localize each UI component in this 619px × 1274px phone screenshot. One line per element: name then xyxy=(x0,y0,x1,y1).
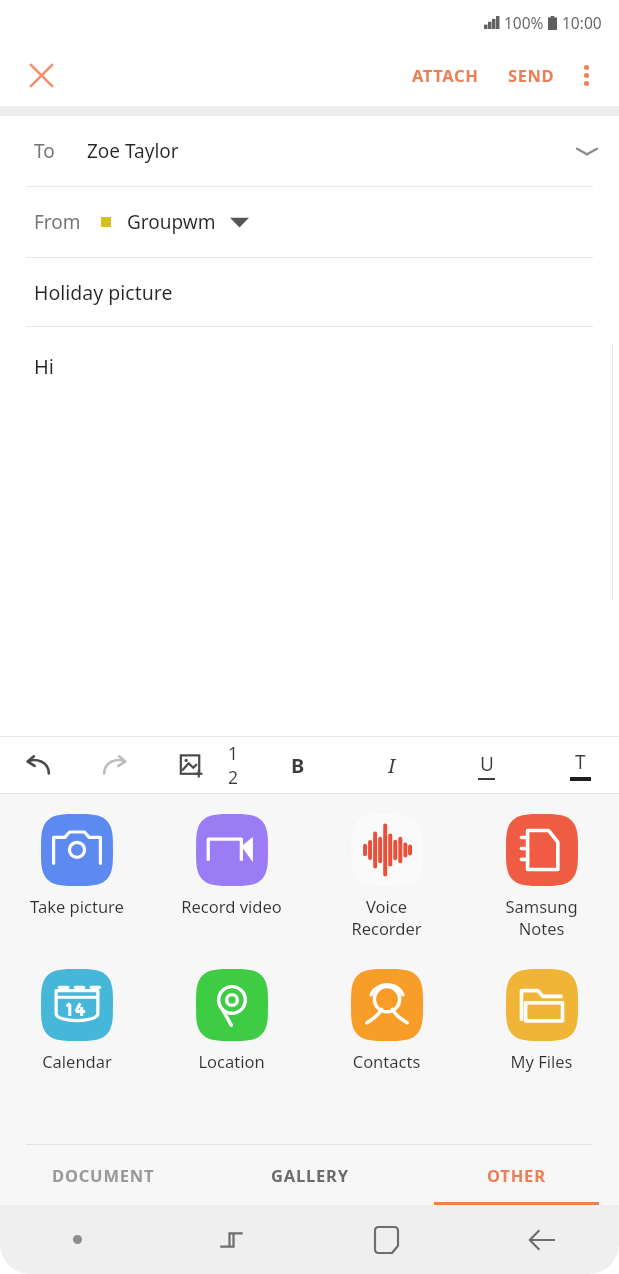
button[interactable]: Redo xyxy=(76,737,152,793)
staticText: T xyxy=(575,749,586,775)
button[interactable]: Contacts xyxy=(309,961,464,1072)
button[interactable]: Underline xyxy=(461,737,511,793)
button[interactable]: GALLERY xyxy=(207,1145,413,1205)
button[interactable]: My Files xyxy=(464,961,619,1072)
staticText: OTHER xyxy=(487,1164,546,1186)
button[interactable]: To xyxy=(0,116,619,186)
button[interactable]: Close xyxy=(18,52,64,98)
button[interactable]: Insert image xyxy=(152,737,228,793)
staticText: Voice Recorder xyxy=(309,895,464,939)
staticText: Record video xyxy=(154,895,309,917)
button[interactable]: Undo xyxy=(0,737,76,793)
button[interactable]: Recents xyxy=(154,1205,309,1274)
button[interactable]: Back xyxy=(464,1205,619,1274)
button[interactable]: Take picture xyxy=(0,806,154,917)
button[interactable]: Location xyxy=(154,961,309,1072)
staticText: To xyxy=(34,138,55,164)
staticText: 10:00 xyxy=(562,12,602,33)
staticText: Zoe Taylor xyxy=(87,138,179,164)
staticText: 100% xyxy=(504,12,544,33)
staticText: GALLERY xyxy=(271,1164,349,1186)
staticText: DOCUMENT xyxy=(52,1164,155,1186)
button[interactable]: Calendar xyxy=(0,961,154,1072)
staticText: ATTACH xyxy=(412,64,479,86)
button[interactable]: Holiday picture xyxy=(0,258,619,326)
staticText: Location xyxy=(154,1050,309,1072)
button[interactable]: Samsung Notes xyxy=(464,806,619,939)
button[interactable]: ATTACH xyxy=(404,54,487,96)
staticText: My Files xyxy=(464,1050,619,1072)
button[interactable]: DOCUMENT xyxy=(0,1145,207,1205)
button[interactable]: Home xyxy=(309,1205,464,1274)
staticText: SEND xyxy=(508,64,555,86)
button[interactable]: Show keyboard xyxy=(0,1205,154,1274)
button[interactable]: Italic xyxy=(367,737,417,793)
staticText: B xyxy=(291,752,305,779)
staticText: Holiday picture xyxy=(34,279,173,306)
button[interactable]: Record video xyxy=(154,806,309,917)
staticText: Contacts xyxy=(309,1050,464,1072)
staticText: Calendar xyxy=(0,1050,154,1072)
button[interactable]: Voice Recorder xyxy=(309,806,464,939)
button[interactable]: More options xyxy=(563,52,609,98)
button[interactable]: OTHER xyxy=(413,1145,619,1205)
button[interactable]: Text color xyxy=(555,737,605,793)
staticText: Take picture xyxy=(0,895,154,917)
staticText: From xyxy=(34,209,81,235)
staticText: I xyxy=(388,752,396,779)
staticText: Groupwm xyxy=(127,209,216,235)
staticText: Hi xyxy=(34,353,54,380)
staticText: U xyxy=(480,751,494,777)
staticText: Samsung Notes xyxy=(464,895,619,939)
button[interactable]: Bold xyxy=(273,737,323,793)
button[interactable]: SEND xyxy=(500,54,563,96)
button[interactable]: From xyxy=(0,187,619,257)
